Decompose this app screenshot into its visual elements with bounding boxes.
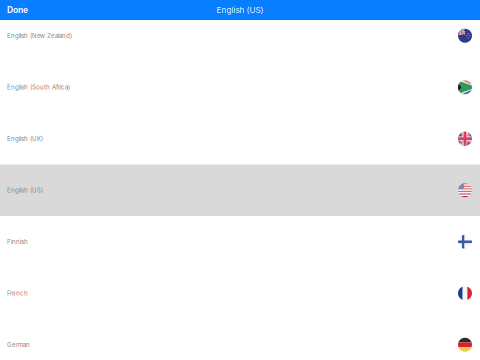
staticText: Finnish — [7, 238, 28, 245]
button[interactable]: Done — [0, 0, 35, 20]
staticText: Done — [7, 5, 28, 15]
staticText: English (New Zealand) — [7, 32, 72, 39]
staticText: German — [7, 341, 30, 348]
staticText: English (South Africa) — [7, 83, 70, 91]
staticText: French — [7, 289, 28, 297]
button[interactable]: German — [0, 319, 480, 360]
button[interactable]: English (South Africa) — [0, 61, 480, 113]
staticText: English (US) — [216, 5, 263, 15]
button[interactable]: French — [0, 267, 480, 319]
button[interactable]: English (US) — [0, 164, 480, 216]
button[interactable]: English (New Zealand) — [0, 10, 480, 61]
button[interactable]: Finnish — [0, 216, 480, 267]
staticText: English (UK) — [7, 135, 43, 142]
button[interactable]: English (UK) — [0, 113, 480, 164]
staticText: English (US) — [7, 186, 43, 194]
